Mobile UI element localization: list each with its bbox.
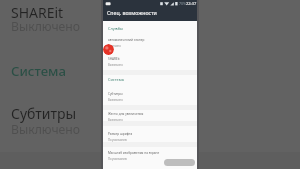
staticText: Размер шрифта <box>108 132 133 136</box>
staticText: SHAREit <box>11 3 64 22</box>
button[interactable]: Размер шрифта <box>103 130 197 143</box>
staticText: 22:37 <box>186 1 197 6</box>
staticText: Выключено <box>108 118 123 122</box>
staticText: Субтитры <box>108 92 123 96</box>
staticText: автоматический сканер <box>108 38 145 42</box>
staticText: Субтитры <box>11 104 77 123</box>
staticText: Выключено <box>11 18 81 35</box>
staticText: Масштаб изображения на экране <box>108 151 160 155</box>
button[interactable]: автоматический сканер <box>103 36 197 49</box>
staticText: По умолчанию <box>108 138 127 142</box>
button[interactable]: Масштаб изображения на экране <box>103 149 197 162</box>
staticText: Спец. возможности <box>107 9 157 16</box>
staticText: Система <box>11 62 66 80</box>
staticText: По умолчанию <box>108 157 127 161</box>
staticText: Выключено <box>108 98 123 102</box>
staticText: SHAREit <box>108 57 120 61</box>
button[interactable]: SHAREit <box>103 55 197 68</box>
other: SHAREit icon <box>103 44 114 55</box>
button[interactable]: Жесты для увеличения <box>103 110 197 123</box>
staticText: Включено <box>108 44 121 48</box>
staticText: Жесты для увеличения <box>108 112 144 116</box>
staticText: Система <box>108 77 124 82</box>
staticText: Службы <box>108 26 123 31</box>
staticText: 70% <box>179 1 187 6</box>
button[interactable]: Action <box>164 159 195 166</box>
button[interactable]: Субтитры <box>103 90 197 103</box>
staticText: Выключено <box>11 121 81 138</box>
button[interactable]: 70% <box>103 0 197 21</box>
staticText: Выключено <box>108 63 123 67</box>
